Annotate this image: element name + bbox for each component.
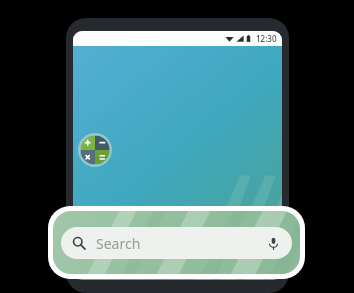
- other: Search: [72, 236, 86, 250]
- button[interactable]: Search: [53, 211, 300, 274]
- button[interactable]: Search: [61, 227, 292, 259]
- button[interactable]: Calculator: [78, 133, 112, 167]
- staticText: Search: [96, 234, 260, 253]
- staticText: 12:30: [256, 33, 277, 44]
- button[interactable]: Voice search: [260, 230, 286, 256]
